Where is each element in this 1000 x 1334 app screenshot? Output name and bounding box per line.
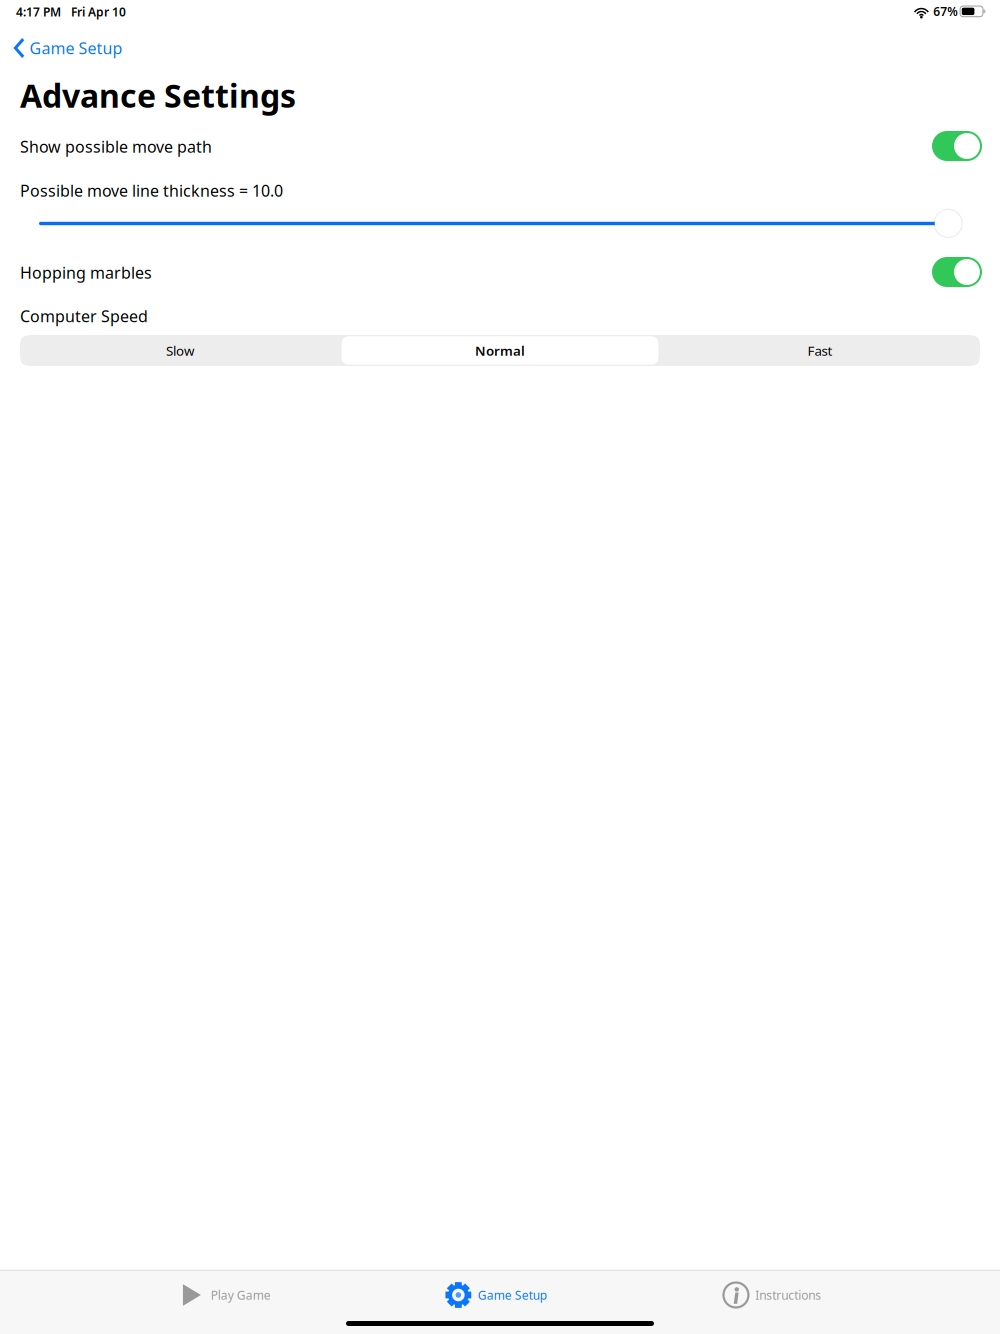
staticText: Possible move line thickness = 10.0: [20, 180, 283, 201]
staticText: Fri Apr 10: [71, 4, 126, 20]
staticText: Advance Settings: [20, 74, 296, 116]
staticText: Instructions: [755, 1287, 821, 1303]
button[interactable]: Normal: [340, 335, 660, 366]
button[interactable]: Play Game: [183, 1280, 271, 1310]
staticText: Fast: [807, 342, 832, 359]
button[interactable]: Instructions: [723, 1280, 821, 1310]
button[interactable]: Possible move line thickness: [933, 208, 963, 238]
button[interactable]: Slow: [20, 335, 340, 366]
staticText: 67%: [933, 3, 958, 19]
button[interactable]: Show possible move path: [932, 131, 982, 161]
staticText: 4:17 PM: [16, 4, 61, 20]
staticText: Computer Speed: [20, 305, 148, 327]
button[interactable]: Game Setup: [445, 1280, 547, 1310]
staticText: Normal: [475, 342, 525, 359]
button[interactable]: Hopping marbles: [932, 257, 982, 287]
staticText: Hopping marbles: [20, 262, 152, 283]
staticText: Play Game: [211, 1287, 271, 1303]
button[interactable]: Fast: [660, 335, 980, 366]
staticText: Show possible move path: [20, 136, 212, 157]
staticText: Slow: [166, 342, 194, 359]
staticText: Game Setup: [29, 37, 122, 59]
staticText: Game Setup: [478, 1287, 547, 1303]
button[interactable]: Game Setup: [13, 33, 122, 63]
